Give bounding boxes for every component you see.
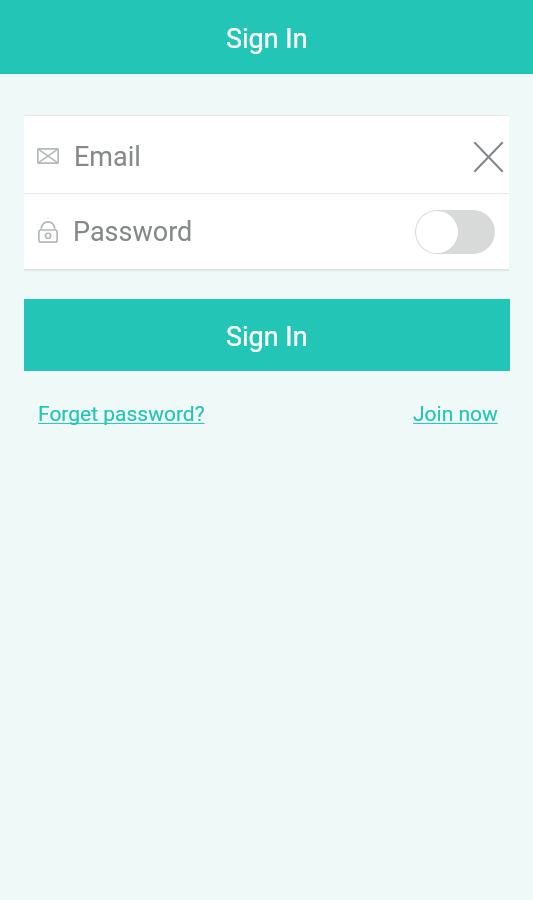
button[interactable]: Forget password? xyxy=(38,394,205,435)
button[interactable]: Email xyxy=(24,116,509,193)
staticText: Forget password? xyxy=(38,402,205,427)
staticText: Sign In xyxy=(226,23,308,55)
button[interactable]: Show password xyxy=(415,210,495,254)
button[interactable]: Sign In xyxy=(24,299,510,371)
button[interactable]: Join now xyxy=(413,394,498,435)
staticText: Sign In xyxy=(226,321,308,353)
button[interactable]: Password xyxy=(24,194,509,269)
staticText: Password xyxy=(73,216,193,248)
staticText: Email xyxy=(74,141,141,173)
button[interactable]: Clear email xyxy=(458,133,502,177)
staticText: Join now xyxy=(413,402,498,427)
